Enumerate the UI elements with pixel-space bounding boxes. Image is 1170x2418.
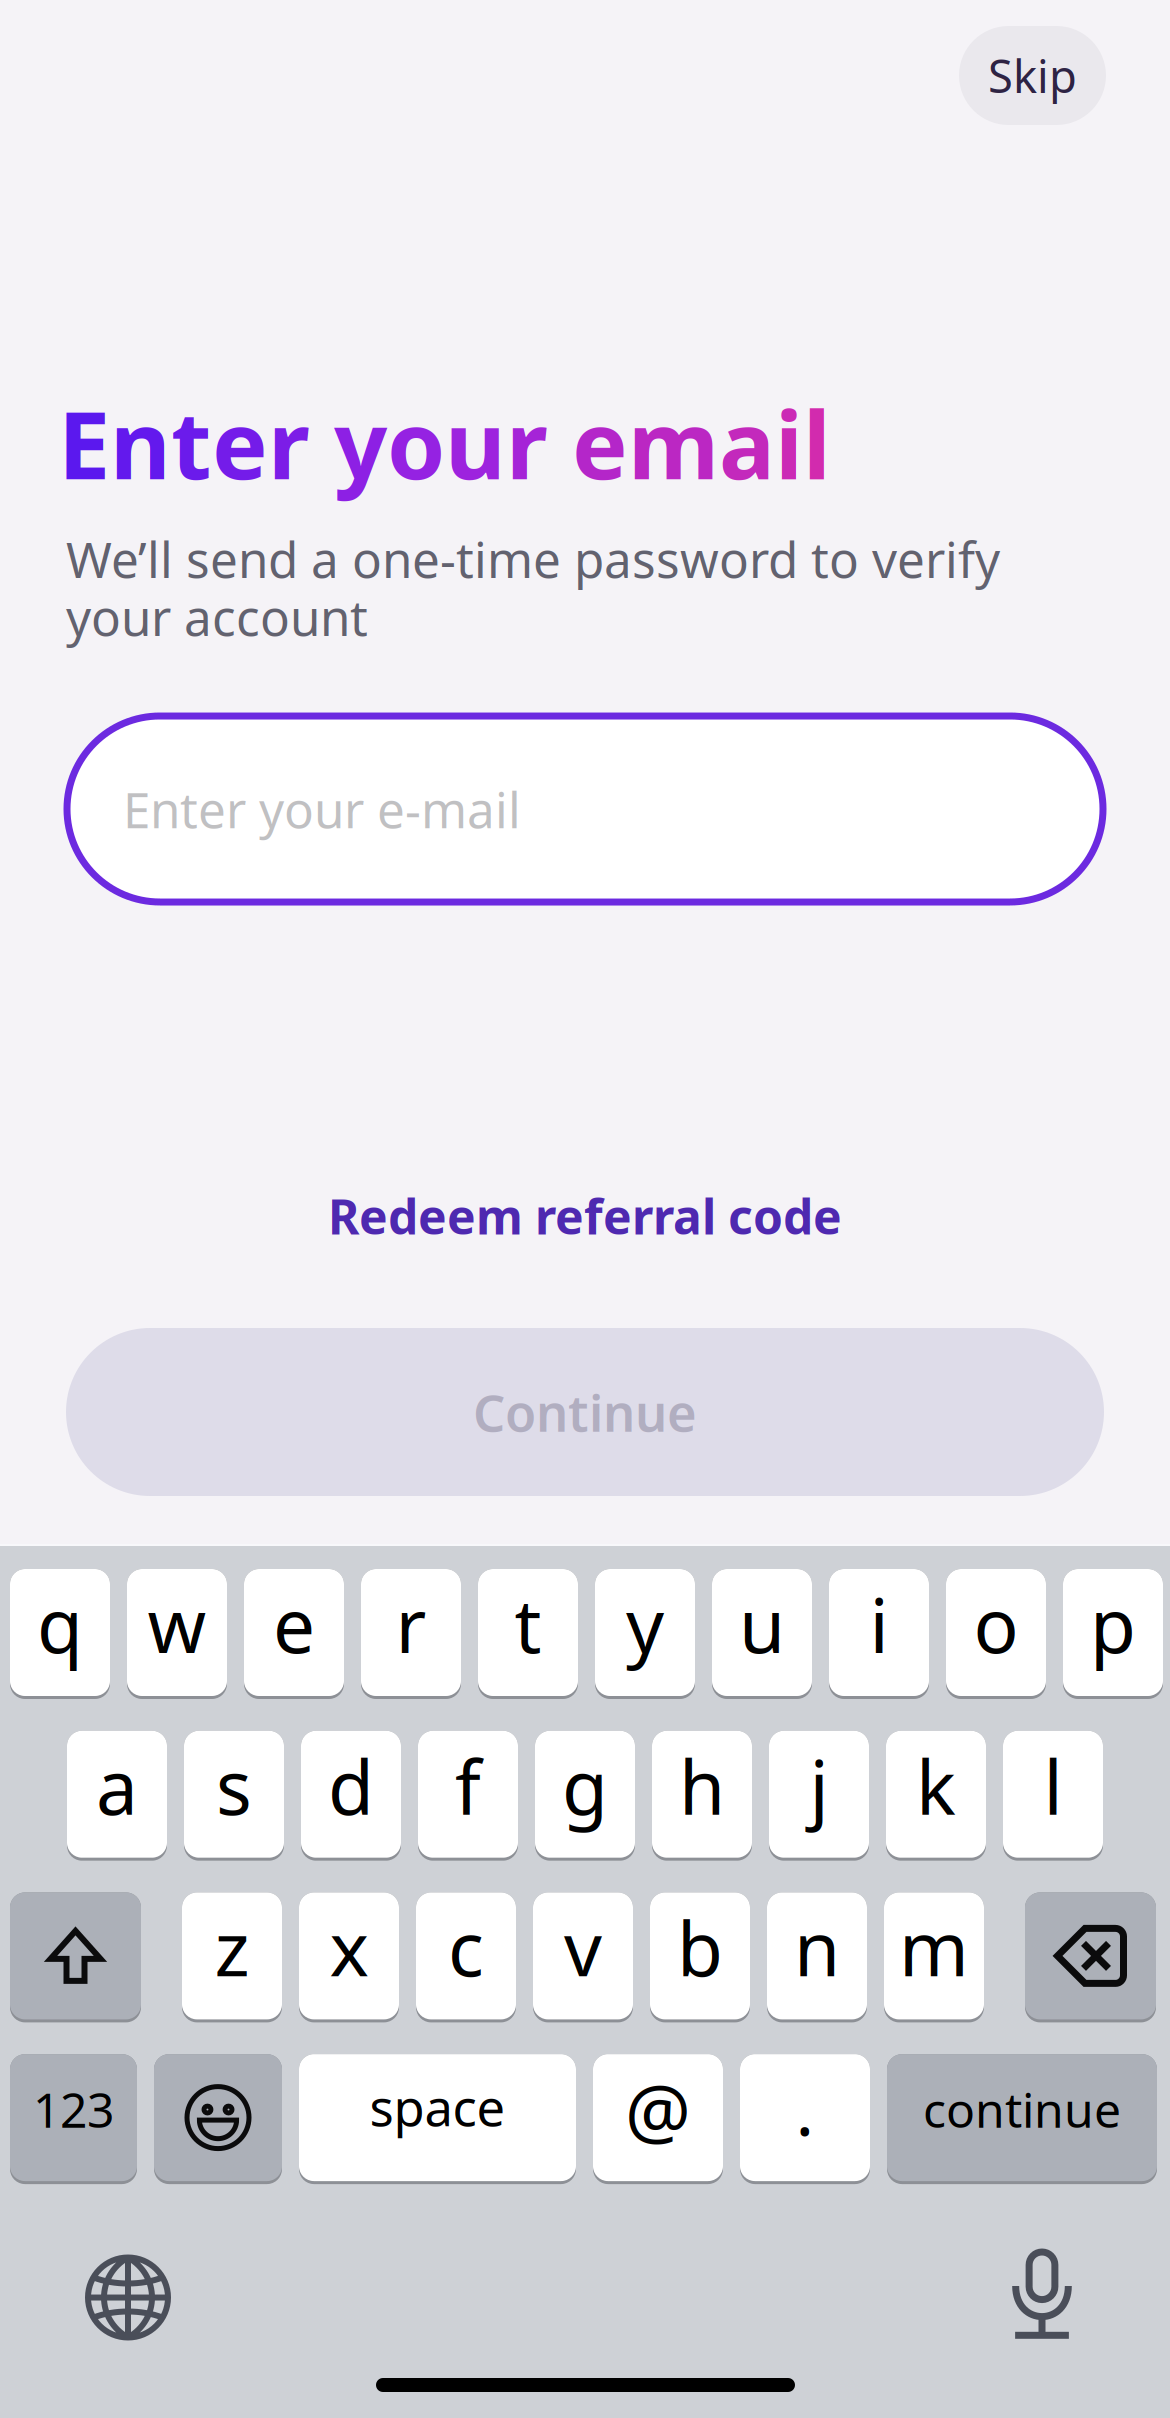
button[interactable]: g (535, 1731, 635, 1861)
button[interactable]: q (10, 1569, 110, 1699)
staticText: Enter your e-mail (123, 776, 521, 842)
staticText: w (147, 1574, 206, 1674)
staticText: Skip (988, 45, 1077, 106)
staticText: n (794, 1898, 840, 1997)
staticText: r (268, 381, 310, 505)
staticText: a (96, 1736, 138, 1835)
button[interactable]: Shift (10, 1892, 141, 2022)
button[interactable]: Emoji (154, 2054, 282, 2184)
staticText: p (1090, 1574, 1136, 1674)
button[interactable]: p (1063, 1569, 1163, 1699)
staticText: r (506, 381, 548, 505)
staticText: e (572, 381, 628, 505)
button[interactable]: continue (887, 2054, 1157, 2184)
button[interactable]: e (244, 1569, 344, 1699)
staticText: y (626, 1574, 664, 1674)
staticText: . (795, 2063, 814, 2155)
staticText: 123 (33, 2077, 114, 2141)
button[interactable]: x (299, 1892, 399, 2022)
staticText: b (677, 1898, 723, 1997)
staticText: t (171, 381, 212, 505)
button[interactable]: s (184, 1731, 284, 1861)
staticText: Continue (473, 1378, 697, 1446)
staticText: c (448, 1898, 484, 1997)
button[interactable]: i (829, 1569, 929, 1699)
button[interactable]: Continue (66, 1328, 1104, 1496)
staticText: i (775, 381, 803, 505)
button[interactable]: Dictate (1014, 2252, 1070, 2337)
staticText: l (1043, 1736, 1062, 1835)
staticText: e (212, 381, 268, 505)
button[interactable]: j (769, 1731, 869, 1861)
button[interactable]: d (301, 1731, 401, 1861)
button[interactable]: b (650, 1892, 750, 2022)
button[interactable]: t (478, 1569, 578, 1699)
button[interactable]: . (740, 2054, 870, 2184)
staticText: Redeem referral code (328, 1184, 842, 1248)
staticText: m (899, 1898, 969, 1997)
staticText: m (628, 381, 719, 505)
staticText: your account (66, 584, 368, 649)
staticText: u (445, 381, 506, 505)
button[interactable]: v (533, 1892, 633, 2022)
button[interactable]: m (884, 1892, 984, 2022)
button[interactable]: h (652, 1731, 752, 1861)
button[interactable]: space (299, 2054, 576, 2184)
staticText: n (110, 381, 171, 505)
button[interactable]: c (416, 1892, 516, 2022)
button[interactable]: y (595, 1569, 695, 1699)
button[interactable]: Change keyboard (88, 2257, 168, 2338)
staticText: j (809, 1736, 828, 1835)
staticText: l (803, 381, 831, 505)
staticText: k (916, 1736, 956, 1835)
button[interactable]: n (767, 1892, 867, 2022)
staticText: h (679, 1736, 725, 1835)
staticText: d (328, 1736, 374, 1835)
staticText: v (564, 1898, 602, 1997)
staticText: e (273, 1574, 315, 1674)
button[interactable]: Skip (959, 26, 1106, 125)
button[interactable]: u (712, 1569, 812, 1699)
staticText: o (973, 1574, 1018, 1674)
button[interactable]: @ (593, 2054, 723, 2184)
button[interactable]: z (182, 1892, 282, 2022)
staticText: We’ll send a one-time password to verify (66, 526, 1000, 591)
staticText: space (369, 2073, 505, 2140)
staticText: r (395, 1574, 426, 1674)
button[interactable]: Delete (1025, 1892, 1156, 2022)
button[interactable]: 123 (10, 2054, 137, 2184)
button[interactable]: a (67, 1731, 167, 1861)
staticText: E (58, 381, 110, 505)
button[interactable]: l (1003, 1731, 1103, 1861)
staticText: z (214, 1898, 249, 1997)
staticText: i (869, 1574, 888, 1674)
button[interactable]: Redeem referral code (64, 1186, 1106, 1246)
staticText: o (387, 381, 445, 505)
staticText: @ (625, 2060, 691, 2158)
staticText: u (739, 1574, 785, 1674)
staticText: t (514, 1574, 541, 1674)
staticText: g (562, 1736, 608, 1835)
button[interactable]: f (418, 1731, 518, 1861)
button[interactable]: k (886, 1731, 986, 1861)
button[interactable]: o (946, 1569, 1046, 1699)
staticText: continue (923, 2077, 1121, 2141)
staticText: s (216, 1736, 252, 1835)
staticText: x (329, 1898, 368, 1997)
button[interactable]: r (361, 1569, 461, 1699)
button[interactable]: w (127, 1569, 227, 1699)
staticText: q (37, 1574, 83, 1674)
staticText: a (719, 381, 775, 505)
staticText: f (455, 1736, 481, 1835)
staticText: y (334, 381, 387, 505)
